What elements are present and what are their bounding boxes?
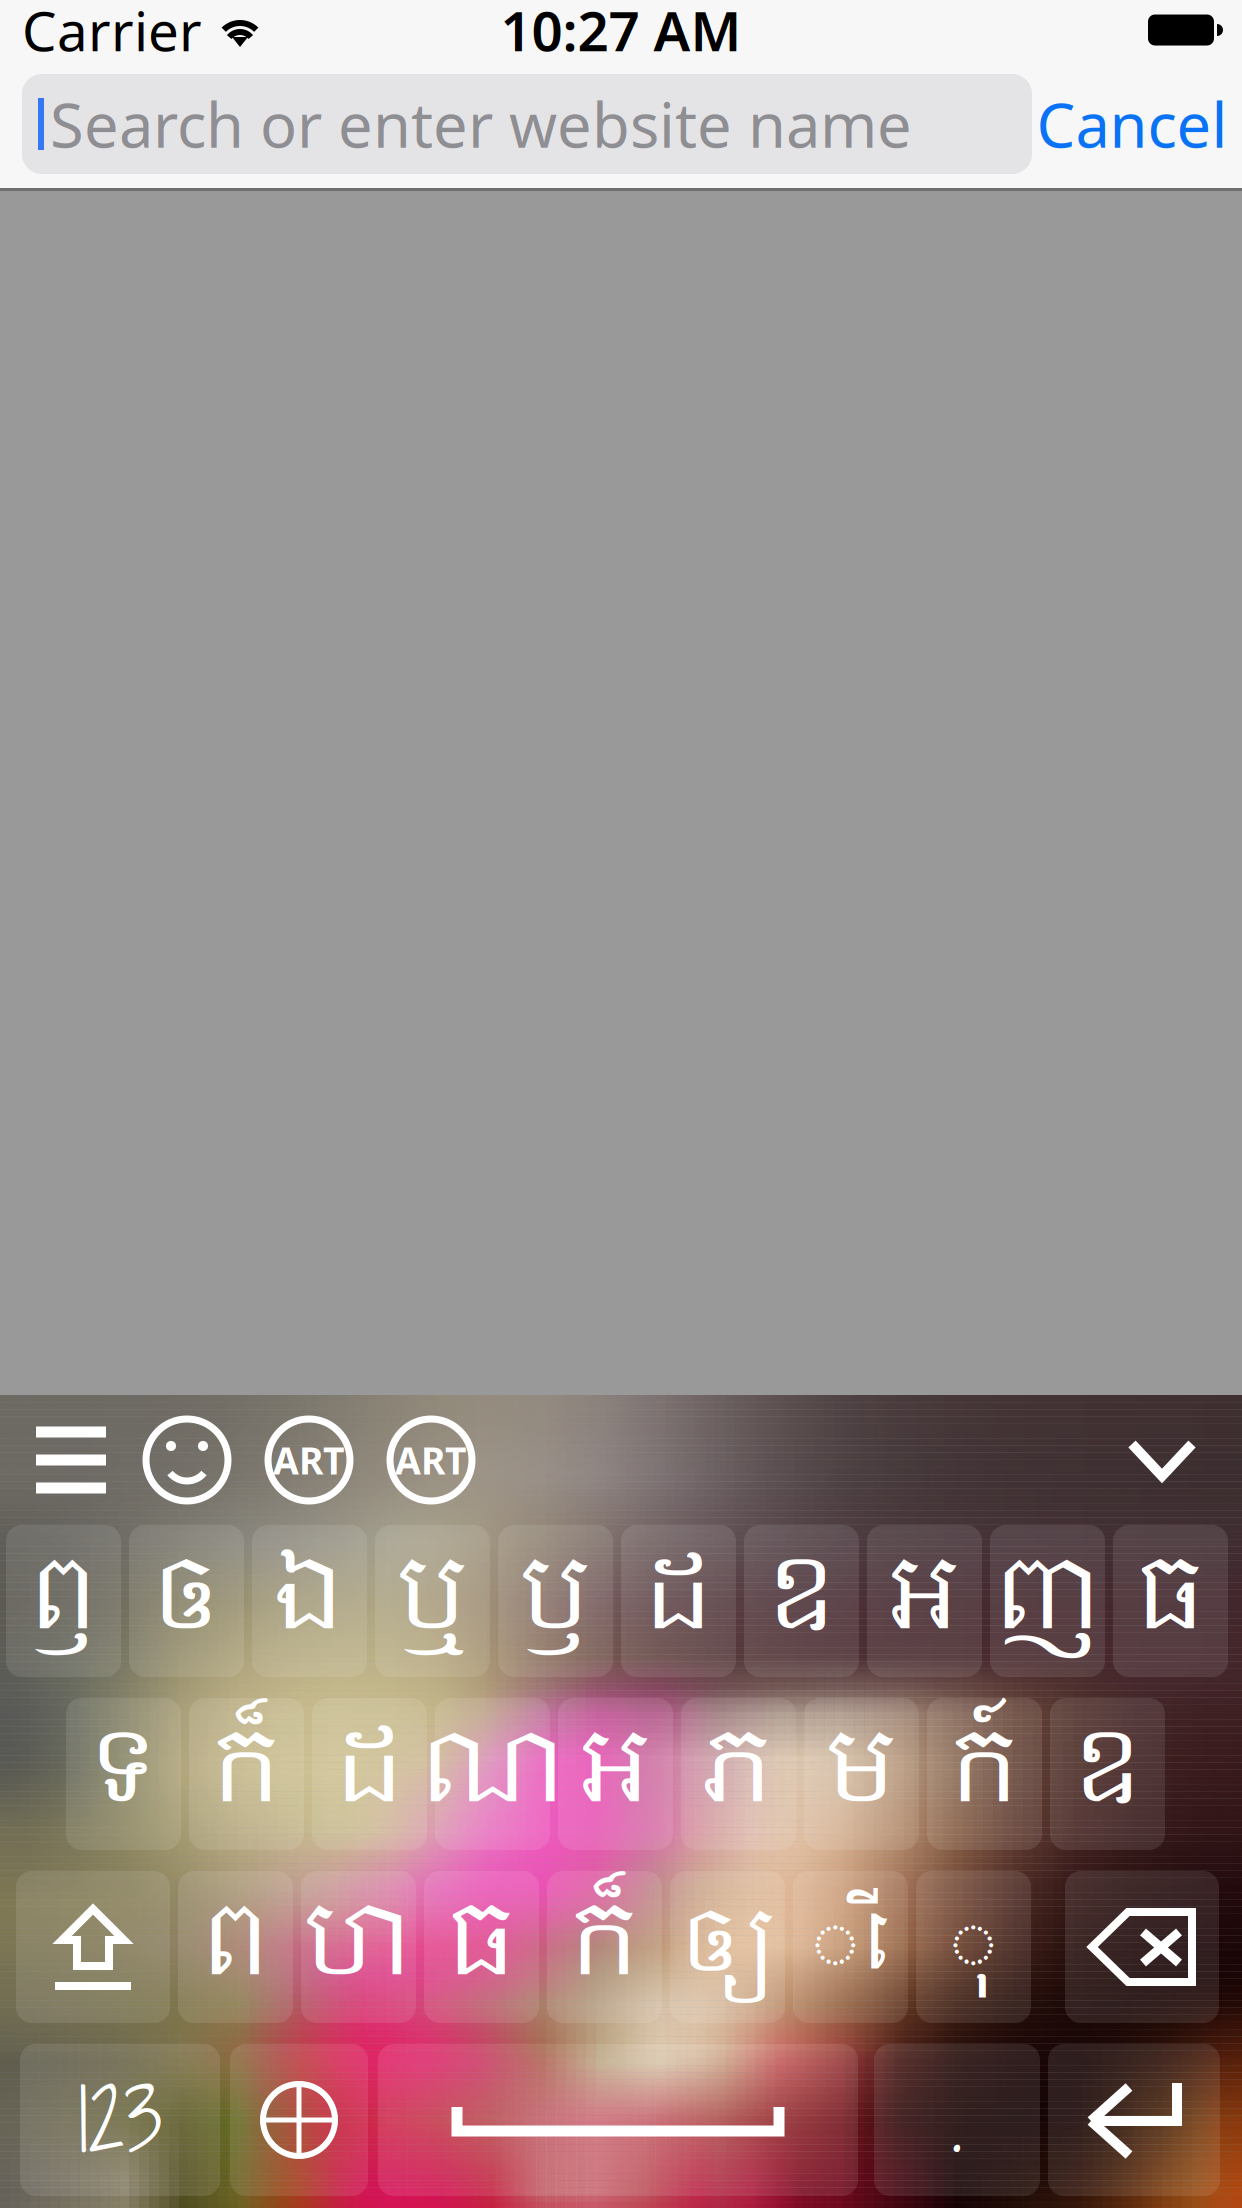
staticText: ទ	[85, 1687, 162, 1861]
button[interactable]: ុ	[916, 1871, 1031, 2023]
staticText: ក៏	[566, 1860, 643, 2034]
staticText: ដ	[331, 1687, 408, 1861]
staticText: ហ	[301, 1860, 416, 2034]
staticText: ឲ្យ	[677, 1872, 777, 2022]
staticText: ធ	[443, 1860, 520, 2034]
button[interactable]: ធ	[424, 1871, 539, 2023]
staticText: ឧ	[1069, 1687, 1146, 1861]
staticText: ណ	[416, 1687, 569, 1861]
staticText: ឲ	[148, 1514, 225, 1688]
staticText: ឭ	[25, 1514, 102, 1688]
staticText: ◌េី	[811, 1879, 889, 2015]
staticText: ញ	[990, 1514, 1105, 1688]
staticText: អ	[886, 1514, 963, 1688]
staticText: ឧ	[763, 1514, 840, 1688]
staticText: ក៍	[946, 1687, 1023, 1861]
staticText: Carrier	[22, 0, 202, 66]
button[interactable]: ក៍	[927, 1698, 1042, 1850]
staticText: ម	[823, 1687, 900, 1861]
button[interactable]: ឫ	[498, 1525, 613, 1677]
button[interactable]: Backspace	[1065, 1871, 1219, 2023]
button[interactable]: Next keyboard	[230, 2044, 368, 2196]
button[interactable]: Numbers	[20, 2044, 220, 2196]
button[interactable]: Search or enter website name	[22, 74, 1032, 174]
button[interactable]: ឬ	[375, 1525, 490, 1677]
staticText: 10:27 AM	[500, 0, 741, 66]
button[interactable]: ញ	[990, 1525, 1105, 1677]
button[interactable]: ព	[178, 1871, 293, 2023]
button[interactable]: Return	[1048, 2044, 1220, 2196]
staticText: ធ	[1132, 1514, 1209, 1688]
button[interactable]: Keyboard menu	[16, 1401, 126, 1519]
button[interactable]: អ	[558, 1698, 673, 1850]
button[interactable]: Hide keyboard	[1102, 1401, 1222, 1519]
staticText: ART	[273, 1435, 345, 1485]
staticText: ឫ	[517, 1514, 594, 1688]
button[interactable]: ហ	[301, 1871, 416, 2023]
button[interactable]: ធ	[1113, 1525, 1228, 1677]
button[interactable]: ក៏	[547, 1871, 662, 2023]
staticText: ◌ុ	[949, 1879, 997, 2015]
button[interactable]: Cancel	[1032, 74, 1232, 174]
button[interactable]: អ	[867, 1525, 982, 1677]
button[interactable]: ទ	[66, 1698, 181, 1850]
button[interactable]: ដ	[621, 1525, 736, 1677]
button[interactable]: ឧ	[744, 1525, 859, 1677]
button[interactable]: ភ	[681, 1698, 796, 1850]
button[interactable]: ឯ	[252, 1525, 367, 1677]
staticText: ព	[197, 1860, 274, 2034]
button[interactable]: Art fonts	[370, 1401, 492, 1519]
button[interactable]: ើ	[793, 1871, 908, 2023]
staticText: ក៏	[208, 1687, 285, 1861]
button[interactable]: ណ	[435, 1698, 550, 1850]
button[interactable]: ឧ	[1050, 1698, 1165, 1850]
button[interactable]: ម	[804, 1698, 919, 1850]
button[interactable]: ឲ	[129, 1525, 244, 1677]
staticText: Search or enter website name	[50, 83, 912, 165]
button[interactable]: Period	[874, 2044, 1040, 2196]
button[interactable]: Emoji	[126, 1401, 248, 1519]
staticText: 123	[77, 2060, 162, 2180]
button[interactable]: Shift	[16, 1871, 170, 2023]
staticText: ឯ	[271, 1514, 348, 1688]
button[interactable]: ឭ	[6, 1525, 121, 1677]
staticText: ឬ	[394, 1514, 471, 1688]
button[interactable]: Art	[248, 1401, 370, 1519]
button[interactable]: ឲ្យ	[670, 1871, 785, 2023]
button[interactable]: Space	[378, 2044, 858, 2196]
staticText: ART	[395, 1435, 467, 1485]
staticText: ដ	[640, 1514, 717, 1688]
button[interactable]: ដ	[312, 1698, 427, 1850]
staticText: អ	[577, 1687, 654, 1861]
staticText: ភ	[700, 1687, 777, 1861]
staticText: .	[951, 2060, 963, 2180]
button[interactable]: ក៏	[189, 1698, 304, 1850]
staticText: Cancel	[1036, 83, 1227, 165]
